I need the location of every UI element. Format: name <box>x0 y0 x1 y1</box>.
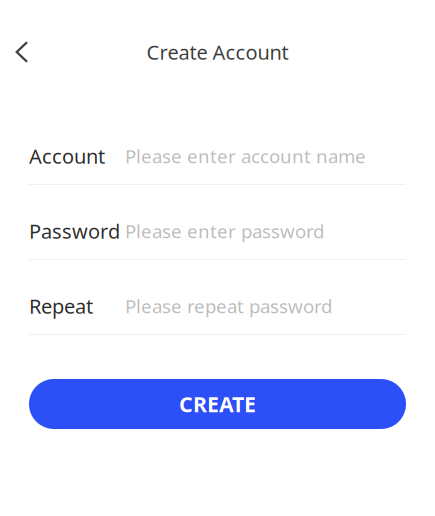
button[interactable]: Back <box>0 30 44 74</box>
staticText: Account <box>29 143 105 169</box>
staticText: Please enter account name <box>125 144 366 168</box>
button[interactable]: CREATE <box>29 379 406 429</box>
button[interactable]: Account <box>29 110 406 185</box>
button[interactable]: Repeat <box>29 260 406 335</box>
staticText: Please repeat password <box>125 294 332 318</box>
staticText: Password <box>29 218 120 244</box>
staticText: Please enter password <box>125 219 324 243</box>
staticText: CREATE <box>179 390 256 418</box>
button[interactable]: Password <box>29 185 406 260</box>
staticText: Repeat <box>29 293 93 319</box>
staticText: Create Account <box>146 39 288 65</box>
